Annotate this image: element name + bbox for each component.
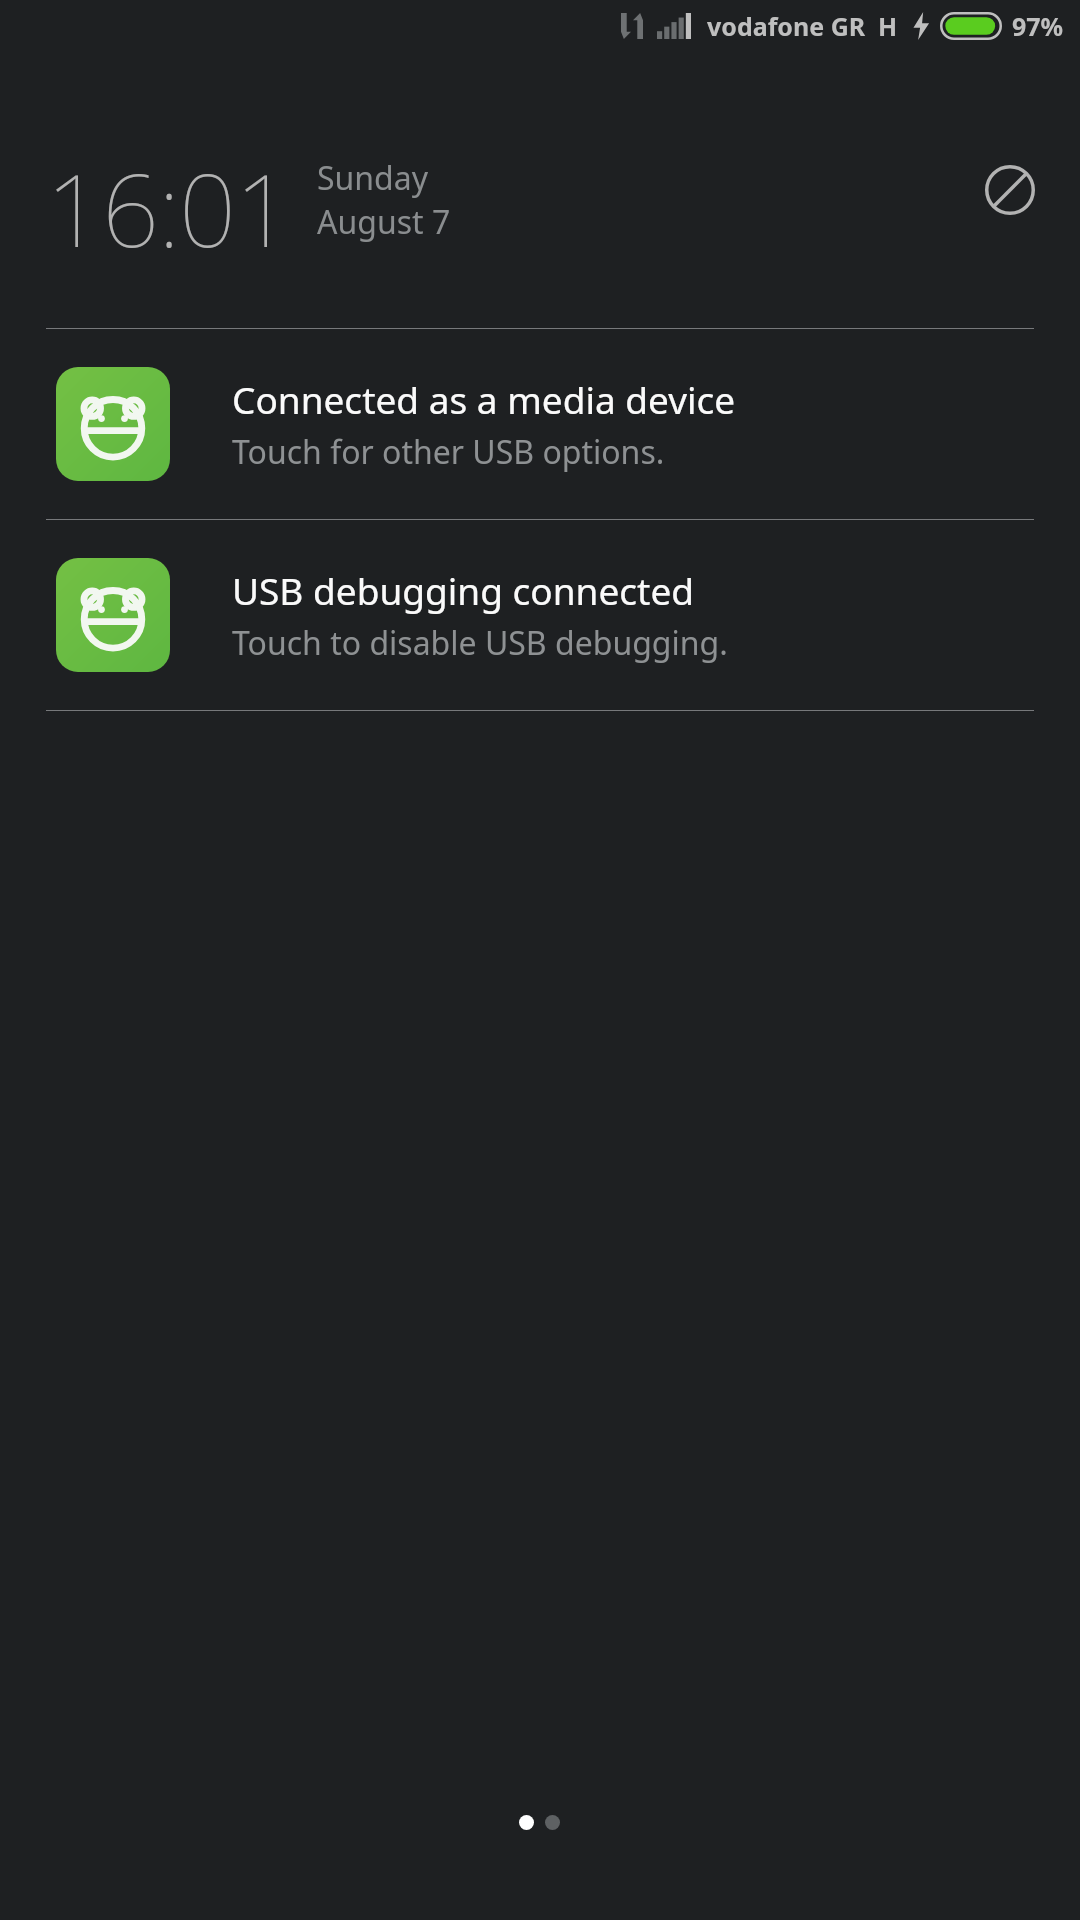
staticText: vodafone GR <box>707 9 866 43</box>
staticText: 16:01 <box>46 140 291 276</box>
button[interactable]: Connected as a media device <box>0 329 1080 519</box>
staticText: Connected as a media device <box>232 374 736 424</box>
staticText: August 7 <box>317 200 451 244</box>
staticText: H <box>878 9 898 43</box>
staticText: 97% <box>1012 9 1064 43</box>
button[interactable]: Do not disturb <box>978 158 1042 222</box>
button[interactable]: USB debugging connected <box>0 520 1080 710</box>
staticText: USB debugging connected <box>232 565 695 615</box>
staticText: Touch to disable USB debugging. <box>232 621 728 665</box>
staticText: Touch for other USB options. <box>232 430 665 474</box>
staticText: Sunday <box>317 156 429 200</box>
